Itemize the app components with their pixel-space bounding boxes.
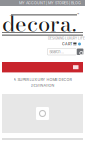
button[interactable]: BLOG bbox=[71, 1, 81, 5]
button[interactable]: MY ACCOUNT bbox=[19, 1, 45, 5]
button[interactable]: CART bbox=[62, 42, 81, 46]
button[interactable]: MY STORES bbox=[48, 1, 68, 5]
button[interactable]: decora. bbox=[2, 14, 83, 33]
staticText: A SUPER LUXURY HOME DECOR bbox=[13, 77, 71, 82]
staticText: CART bbox=[62, 42, 72, 46]
staticText: decora. bbox=[2, 7, 76, 40]
staticText: | bbox=[45, 1, 48, 5]
staticText: MY ACCOUNT bbox=[19, 1, 45, 5]
button[interactable]: Menu bbox=[73, 65, 78, 69]
button[interactable]: Search bbox=[77, 48, 83, 55]
staticText: MY STORES bbox=[48, 1, 68, 5]
staticText: | bbox=[68, 1, 71, 5]
staticText: DESTINATION bbox=[30, 83, 54, 87]
staticText: ™ bbox=[77, 13, 79, 17]
staticText: DESIGNING LUXURY LIFE bbox=[48, 37, 85, 40]
staticText: BLOG bbox=[71, 1, 81, 5]
staticText: Search ... bbox=[49, 49, 64, 54]
